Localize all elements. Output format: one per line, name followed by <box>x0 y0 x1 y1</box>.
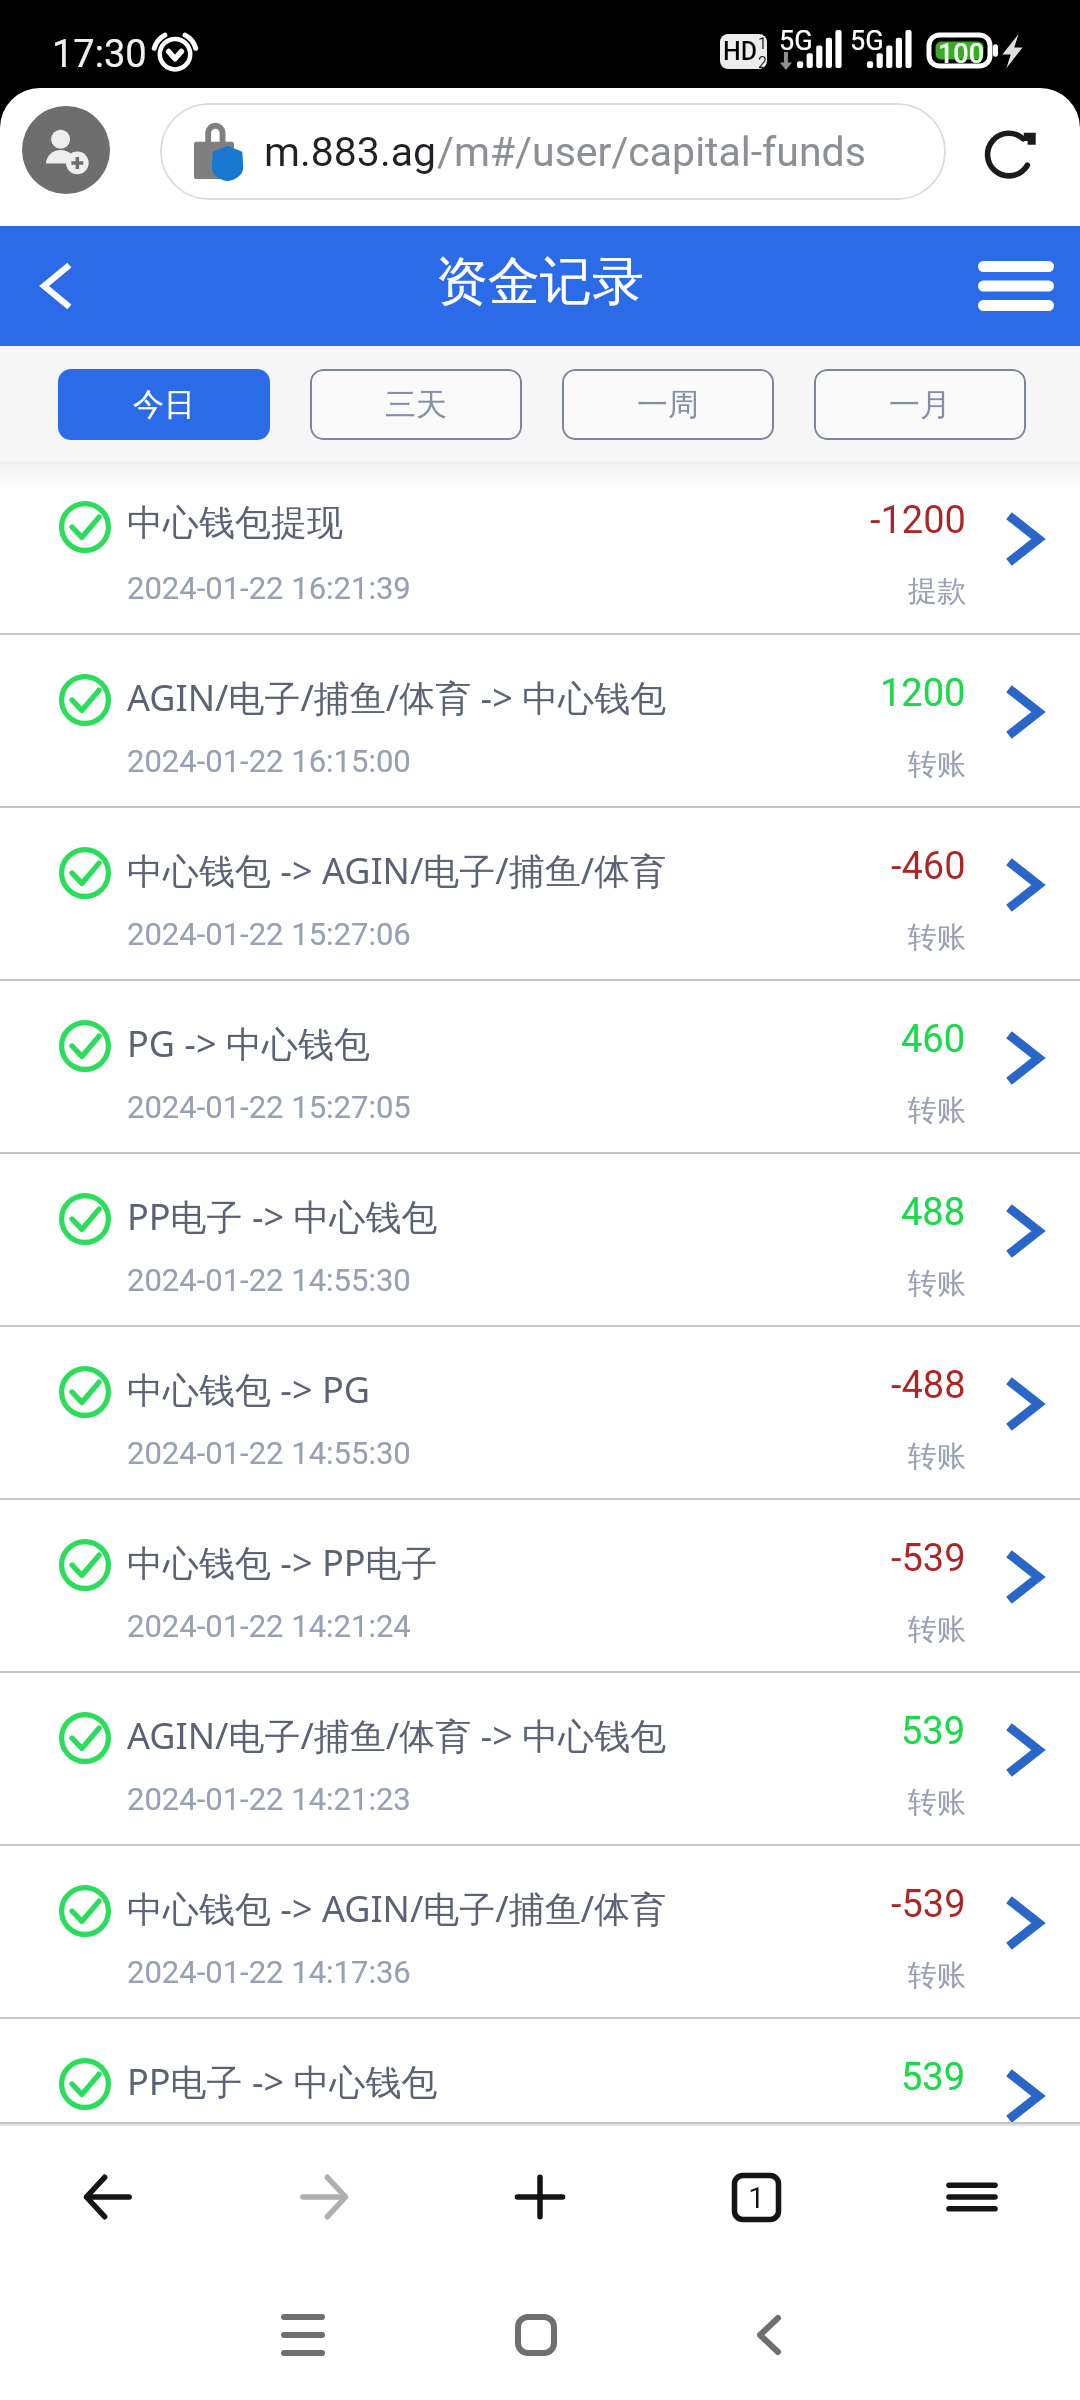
button[interactable]: PP电子 -> 中心钱包 <box>0 1154 1080 1327</box>
button[interactable]: Menu <box>966 236 1066 336</box>
staticText: 转账 <box>908 1957 966 1994</box>
button[interactable]: PG -> 中心钱包 <box>0 981 1080 1154</box>
button[interactable]: 中心钱包 -> PG <box>0 1327 1080 1500</box>
button[interactable]: 今日 <box>58 369 270 440</box>
staticText: 100 <box>938 38 985 70</box>
staticText: AGIN/电子/捕鱼/体育 -> 中心钱包 <box>127 1711 667 1760</box>
button[interactable]: 中心钱包提现 <box>0 462 1080 635</box>
staticText: 2024-01-22 14:55:30 <box>127 1262 411 1298</box>
button[interactable]: PP电子 -> 中心钱包 <box>0 2019 1080 2124</box>
staticText: 1 <box>748 2180 765 2215</box>
button[interactable]: Back <box>709 2270 829 2400</box>
staticText: 17:30 <box>52 32 147 77</box>
staticText: 转账 <box>908 746 966 783</box>
staticText: 一周 <box>637 385 699 424</box>
staticText: 1200 <box>880 671 966 716</box>
button[interactable]: Forward <box>216 2124 432 2270</box>
staticText: 三天 <box>385 385 447 424</box>
staticText: 539 <box>901 2055 966 2100</box>
button[interactable]: New tab <box>432 2124 648 2270</box>
staticText: /m#/user/capital-funds <box>437 128 866 176</box>
button[interactable]: AGIN/电子/捕鱼/体育 -> 中心钱包 <box>0 635 1080 808</box>
staticText: 539 <box>901 1709 966 1754</box>
staticText: 2024-01-22 16:21:39 <box>127 570 411 606</box>
staticText: m.883.ag <box>264 128 437 176</box>
button[interactable]: 中心钱包 -> AGIN/电子/捕鱼/体育 <box>0 1846 1080 2019</box>
button[interactable]: Back <box>14 245 96 327</box>
staticText: 转账 <box>908 1265 966 1302</box>
staticText: 中心钱包提现 <box>127 500 343 545</box>
staticText: 2024-01-22 15:27:05 <box>127 1089 411 1125</box>
button[interactable]: Home <box>476 2270 596 2400</box>
button[interactable]: AGIN/电子/捕鱼/体育 -> 中心钱包 <box>0 1673 1080 1846</box>
button[interactable]: Tabs <box>648 2124 864 2270</box>
staticText: 中心钱包 -> AGIN/电子/捕鱼/体育 <box>127 846 667 895</box>
staticText: 资金记录 <box>436 249 644 315</box>
staticText: 转账 <box>908 1611 966 1648</box>
staticText: HD <box>723 37 758 66</box>
button[interactable]: 中心钱包 -> AGIN/电子/捕鱼/体育 <box>0 808 1080 981</box>
staticText: 今日 <box>133 385 195 424</box>
button[interactable]: m.883.ag <box>160 103 946 200</box>
staticText: -539 <box>891 1882 966 1927</box>
button[interactable]: Reload page <box>972 111 1054 193</box>
button[interactable]: Menu <box>864 2124 1080 2270</box>
staticText: 转账 <box>908 1092 966 1129</box>
staticText: 1 <box>758 34 767 53</box>
staticText: 2024-01-22 14:55:30 <box>127 1435 411 1471</box>
staticText: 2024-01-22 14:17:36 <box>127 1954 411 1990</box>
button[interactable]: Account <box>22 106 110 194</box>
staticText: 2024-01-22 16:15:00 <box>127 743 411 779</box>
staticText: PP电子 -> 中心钱包 <box>127 2057 438 2106</box>
staticText: PG -> 中心钱包 <box>127 1019 370 1068</box>
staticText: -539 <box>891 1536 966 1581</box>
staticText: 中心钱包 -> PP电子 <box>127 1538 438 1587</box>
staticText: 5G <box>850 25 884 57</box>
button[interactable]: 一月 <box>814 369 1026 440</box>
staticText: 中心钱包 -> AGIN/电子/捕鱼/体育 <box>127 1884 667 1933</box>
button[interactable]: Recent apps <box>243 2270 363 2400</box>
button[interactable]: Back <box>0 2124 216 2270</box>
staticText: -460 <box>891 844 966 889</box>
staticText: 转账 <box>908 1784 966 1821</box>
staticText: 中心钱包 -> PG <box>127 1365 370 1414</box>
staticText: 提款 <box>908 573 966 610</box>
staticText: 460 <box>901 1017 966 1062</box>
staticText: -488 <box>891 1363 966 1408</box>
staticText: 2024-01-22 14:21:23 <box>127 1781 411 1817</box>
staticText: 5G <box>779 25 813 57</box>
staticText: 2024-01-22 14:21:24 <box>127 1608 411 1644</box>
staticText: AGIN/电子/捕鱼/体育 -> 中心钱包 <box>127 673 667 722</box>
button[interactable]: 中心钱包 -> PP电子 <box>0 1500 1080 1673</box>
staticText: 488 <box>901 1190 966 1235</box>
staticText: -1200 <box>870 498 966 543</box>
staticText: 转账 <box>908 919 966 956</box>
staticText: 2 <box>758 53 767 68</box>
staticText: 转账 <box>908 1438 966 1475</box>
staticText: 2024-01-22 15:27:06 <box>127 916 411 952</box>
button[interactable]: 三天 <box>310 369 522 440</box>
staticText: 一月 <box>889 385 951 424</box>
staticText: PP电子 -> 中心钱包 <box>127 1192 438 1241</box>
button[interactable]: 一周 <box>562 369 774 440</box>
